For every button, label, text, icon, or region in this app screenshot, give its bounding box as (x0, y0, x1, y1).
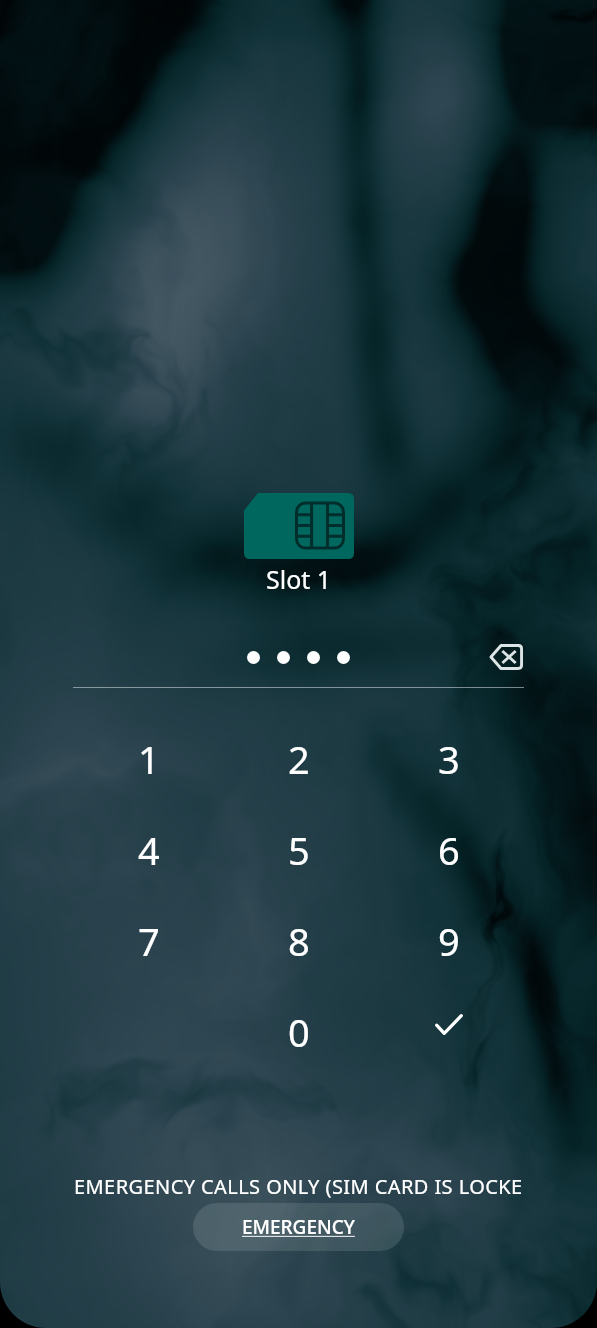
staticText: Slot 1 (266, 562, 332, 596)
button[interactable]: EMERGENCY (193, 1203, 404, 1251)
staticText: 6 (438, 824, 460, 876)
staticText: 9 (438, 915, 460, 967)
button[interactable]: 1 (104, 714, 194, 804)
button[interactable]: 8 (254, 896, 344, 986)
staticText: EMERGENCY CALLS ONLY (SIM CARD IS LOCKED… (74, 1173, 521, 1199)
button[interactable]: Backspace (483, 635, 527, 679)
staticText: 2 (288, 733, 310, 785)
button[interactable]: 9 (404, 896, 494, 986)
staticText: 0 (288, 1006, 310, 1058)
button[interactable]: 0 (254, 987, 344, 1077)
button[interactable]: Confirm (404, 979, 494, 1069)
staticText: EMERGENCY (242, 1214, 355, 1240)
staticText: 1 (138, 733, 160, 785)
staticText: 3 (438, 733, 460, 785)
button[interactable]: 2 (254, 714, 344, 804)
staticText: 5 (288, 824, 310, 876)
button[interactable]: 6 (404, 805, 494, 895)
staticText: 4 (138, 824, 160, 876)
button[interactable]: 3 (404, 714, 494, 804)
staticText: 7 (138, 915, 160, 967)
button[interactable]: 7 (104, 896, 194, 986)
button[interactable]: 5 (254, 805, 344, 895)
staticText: 8 (288, 915, 310, 967)
button[interactable]: 4 (104, 805, 194, 895)
